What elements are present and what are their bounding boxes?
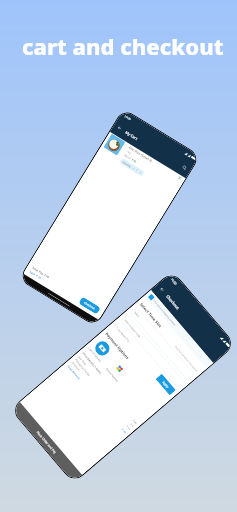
staticText: Aloo Rice (Small 4): [128, 145, 153, 163]
button[interactable]: Quantity: [119, 158, 145, 177]
staticText: Place Order and Pay: [36, 430, 57, 454]
staticText: 10:30: [170, 277, 178, 286]
staticText: 1 Kg: [126, 149, 132, 155]
staticText: 10:30: [124, 114, 132, 121]
staticText: Online Payment: [105, 367, 119, 383]
staticText: Price Details (1 Item): [82, 351, 102, 375]
button[interactable]: Search: [181, 165, 188, 171]
button[interactable]: Back: [116, 125, 123, 131]
staticText: Checkout: [165, 294, 180, 311]
button[interactable]: Select: [130, 307, 194, 380]
button[interactable]: Apply: [156, 374, 176, 395]
staticText: 1: [135, 168, 138, 172]
other: Back: [159, 286, 166, 293]
other: Back: [116, 125, 123, 131]
staticText: ₹ 89: [132, 419, 138, 425]
staticText: Use Wallet (₹ 0): [117, 328, 130, 343]
staticText: –: [132, 166, 135, 170]
staticText: My Cart: [124, 130, 138, 141]
staticText: Discount: [71, 361, 80, 371]
button[interactable]: Checkout: [78, 296, 101, 315]
staticText: Checkout: [83, 301, 96, 310]
button[interactable]: Enter Coupon Code: [120, 315, 185, 388]
button[interactable]: Place Order and Pay: [11, 402, 82, 482]
staticText: Select Time Slot: [139, 302, 163, 328]
staticText: +: [139, 170, 142, 174]
button[interactable]: Online Payment: [105, 357, 131, 383]
staticText: Total Amount: [67, 364, 81, 380]
staticText: ₹ 10: [125, 424, 131, 430]
staticText: ₹79: [131, 158, 137, 164]
staticText: Save ₹ 10: [29, 270, 42, 280]
staticText: Packaging Charge: [74, 358, 91, 377]
staticText: ₹ 79: [121, 428, 127, 434]
staticText: The name in shipping address: [153, 300, 176, 326]
staticText: Enter Your Last Delivery Time Selection: [175, 345, 198, 373]
button[interactable]: Back: [159, 286, 166, 293]
button[interactable]: Cash on Delivery: [88, 337, 113, 363]
staticText: Total Pay: ₹79: [31, 266, 50, 279]
staticText: Payment Options: [104, 331, 130, 360]
staticText: Sub Total: [78, 355, 87, 366]
staticText: Quantity: [122, 160, 132, 168]
staticText: ₹ 0: [130, 423, 135, 428]
staticText: cart and checkout: [22, 31, 224, 61]
staticText: Enter Coupon Code: [124, 319, 142, 338]
staticText: Select: [133, 311, 141, 318]
staticText: Apply: [162, 380, 170, 389]
staticText: Cash on Delivery: [88, 347, 102, 362]
staticText: ₹89.00: [123, 153, 131, 160]
button[interactable]: Remove item: [176, 175, 183, 181]
